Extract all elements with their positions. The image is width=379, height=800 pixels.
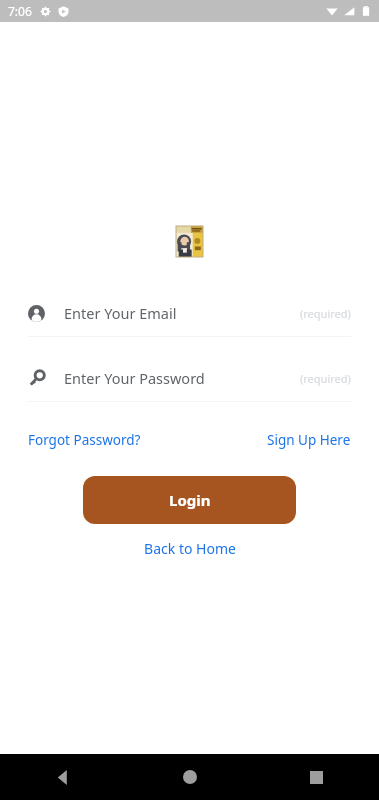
other: Password xyxy=(28,370,45,387)
button[interactable]: Back xyxy=(0,754,127,800)
button[interactable]: Forgot Password? xyxy=(28,428,141,452)
button[interactable]: Login xyxy=(83,476,296,524)
staticText: Forgot Password? xyxy=(28,431,141,449)
staticText: (required) xyxy=(300,371,351,386)
other: Email xyxy=(28,305,45,322)
button[interactable]: Sign Up Here xyxy=(267,428,351,452)
staticText: 7:06 xyxy=(8,3,32,19)
button[interactable]: Email xyxy=(0,298,379,337)
staticText: Sign Up Here xyxy=(267,431,351,449)
staticText: Login xyxy=(169,490,211,510)
staticText: (required) xyxy=(300,306,351,321)
staticText: Enter Your Email xyxy=(64,303,177,323)
staticText: Back to Home xyxy=(144,539,236,558)
button[interactable]: Back to Home xyxy=(138,534,242,563)
button[interactable]: Password xyxy=(0,363,379,402)
button[interactable]: Recent apps xyxy=(253,754,379,800)
staticText: Enter Your Password xyxy=(64,368,205,388)
button[interactable]: Home xyxy=(127,754,253,800)
